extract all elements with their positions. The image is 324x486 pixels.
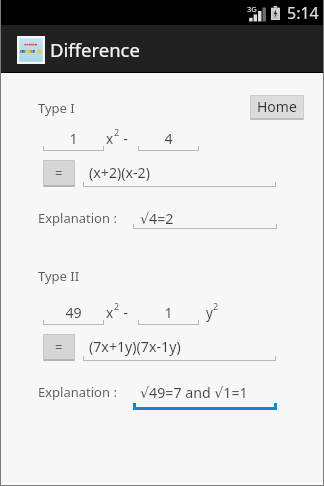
staticText: 2 xyxy=(213,300,219,312)
staticText: - xyxy=(120,304,128,322)
staticText: Home xyxy=(257,97,297,116)
staticText: 5:14 xyxy=(287,2,319,24)
button[interactable]: Equals xyxy=(43,334,75,361)
staticText: Type II xyxy=(38,267,80,285)
staticText: y xyxy=(206,304,213,322)
staticText: 2 xyxy=(114,126,120,138)
staticText: 49 xyxy=(43,303,104,322)
staticText: = xyxy=(55,164,63,182)
staticText: 3G xyxy=(247,4,257,14)
staticText: 1 xyxy=(43,129,104,148)
staticText: 2 xyxy=(114,300,120,312)
staticText: x xyxy=(106,130,114,148)
staticText: √49=7 and √1=1 xyxy=(140,383,248,402)
staticText: √4=2 xyxy=(140,209,174,228)
staticText: 1 xyxy=(138,303,199,322)
staticText: x xyxy=(106,304,114,322)
staticText: (x+2)(x-2) xyxy=(89,163,150,182)
button[interactable]: Home xyxy=(250,95,304,120)
staticText: - xyxy=(120,130,128,148)
staticText: Difference xyxy=(50,37,140,62)
staticText: Explanation : xyxy=(38,209,117,227)
staticText: = xyxy=(55,338,63,356)
staticText: Type I xyxy=(38,99,75,117)
staticText: 4 xyxy=(138,129,199,148)
staticText: (7x+1y)(7x-1y) xyxy=(89,337,181,356)
button[interactable]: Equals xyxy=(43,160,75,187)
staticText: Explanation : xyxy=(38,383,117,401)
